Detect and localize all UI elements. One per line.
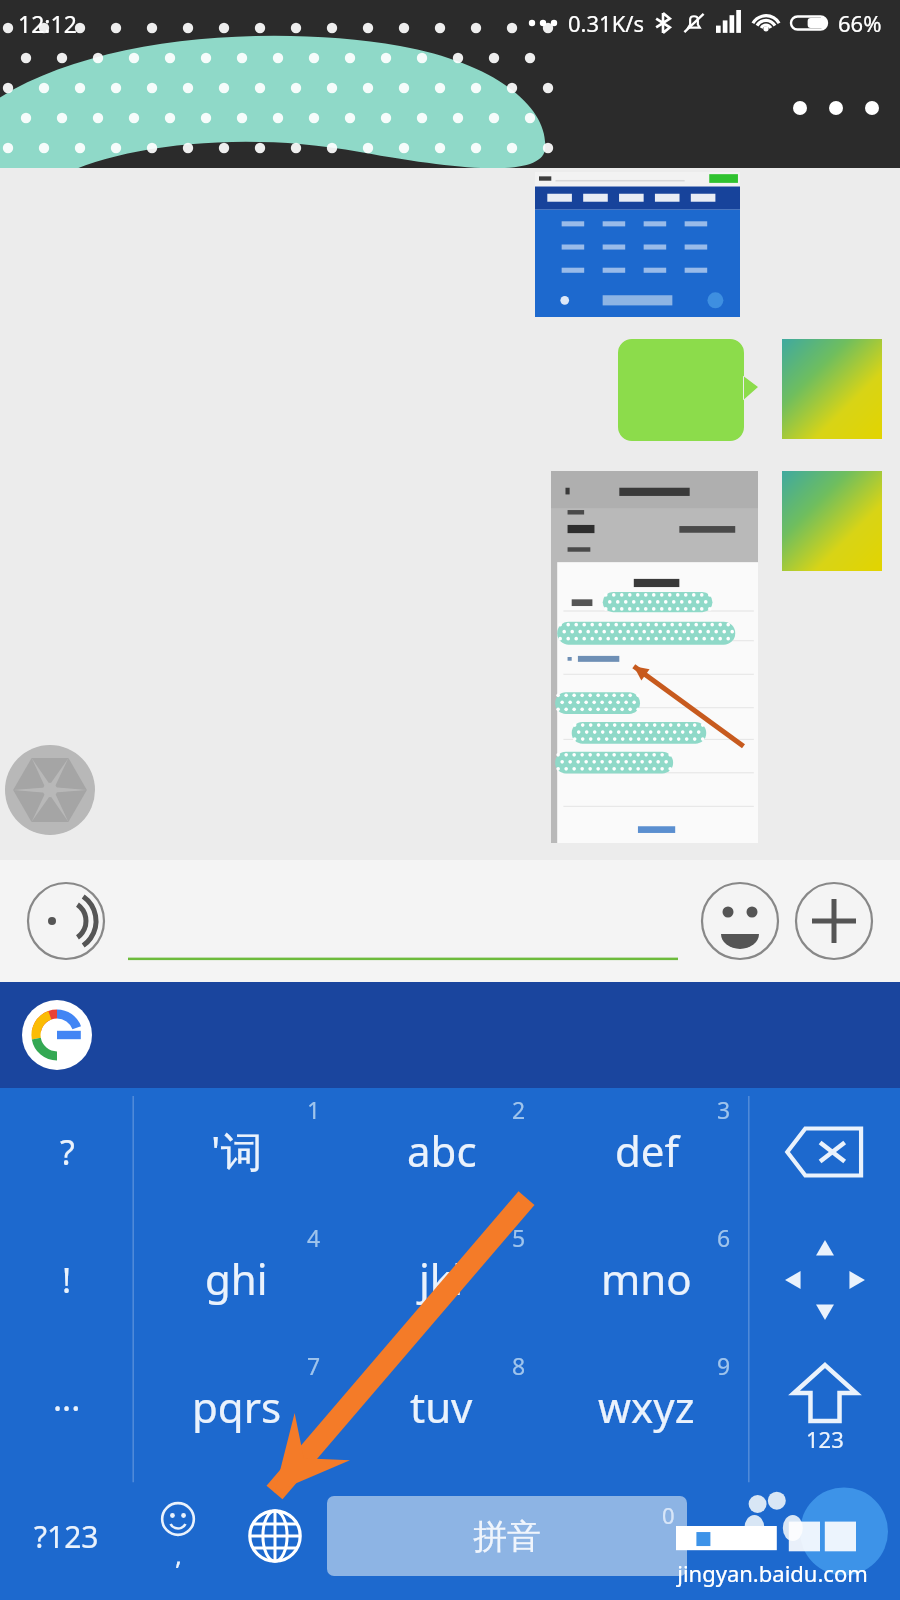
staticText: mno	[601, 1250, 692, 1307]
button[interactable]: 8	[339, 1344, 544, 1472]
staticText: 0.31K/s	[568, 8, 644, 38]
staticText: wxyz	[598, 1378, 695, 1435]
button[interactable]	[535, 172, 740, 317]
staticText: 9	[717, 1350, 731, 1381]
button[interactable]: 4	[134, 1216, 339, 1344]
staticText: 7	[307, 1350, 321, 1381]
staticText: 6	[717, 1222, 731, 1253]
button[interactable]: 5	[339, 1216, 544, 1344]
staticText: '词	[211, 1122, 263, 1179]
staticText: 5	[512, 1222, 526, 1253]
staticText: 1	[307, 1094, 321, 1125]
button[interactable]: Shift	[749, 1344, 900, 1472]
button[interactable]	[782, 339, 882, 439]
button[interactable]: ?	[0, 1088, 134, 1216]
button[interactable]: ···	[0, 1344, 134, 1472]
button[interactable]: Move cursor	[749, 1216, 900, 1344]
button[interactable]: Camera	[0, 740, 100, 840]
staticText: 8	[512, 1350, 526, 1381]
staticText: 拼音	[473, 1515, 541, 1558]
staticText: 66%	[838, 8, 882, 38]
staticText: 3	[717, 1094, 731, 1125]
button[interactable]: 9	[544, 1344, 749, 1472]
button[interactable]: 3	[544, 1088, 749, 1216]
staticText: pqrs	[192, 1378, 282, 1435]
staticText: abc	[407, 1122, 477, 1179]
button[interactable]: 2	[339, 1088, 544, 1216]
staticText: ?	[60, 1129, 75, 1175]
button[interactable]	[618, 339, 758, 441]
button[interactable]	[128, 860, 678, 982]
button[interactable]: !	[0, 1216, 134, 1344]
button[interactable]: ?123	[0, 1472, 133, 1600]
button[interactable]: Add	[794, 881, 874, 961]
staticText: 4	[307, 1222, 321, 1253]
staticText: jkl	[419, 1250, 464, 1307]
staticText: ···	[53, 1385, 81, 1431]
staticText: 123	[806, 1424, 844, 1454]
button[interactable]: Backspace	[749, 1088, 900, 1216]
button[interactable]: Google	[22, 1000, 92, 1070]
button[interactable]: 1	[134, 1088, 339, 1216]
staticText: ?123	[34, 1516, 99, 1557]
staticText: !	[62, 1257, 72, 1303]
staticText: 12:12	[18, 8, 77, 39]
staticText: def	[615, 1122, 679, 1179]
button[interactable]: Emoji	[133, 1472, 223, 1600]
staticText: jingyan.baidu.com	[677, 1558, 868, 1588]
staticText: ,	[175, 1537, 182, 1572]
button[interactable]	[551, 471, 758, 843]
staticText: 2	[512, 1094, 526, 1125]
button[interactable]: Switch language	[223, 1472, 327, 1600]
button[interactable]: 7	[134, 1344, 339, 1472]
button[interactable]: Emoji	[700, 881, 780, 961]
staticText: 0	[662, 1500, 675, 1530]
button[interactable]: 拼音	[327, 1496, 687, 1576]
button[interactable]: 6	[544, 1216, 749, 1344]
staticText: ghi	[205, 1250, 268, 1307]
button[interactable]: Voice message	[26, 881, 106, 961]
button[interactable]	[782, 471, 882, 571]
button[interactable]: More options	[786, 84, 856, 132]
staticText: tuv	[410, 1378, 473, 1435]
